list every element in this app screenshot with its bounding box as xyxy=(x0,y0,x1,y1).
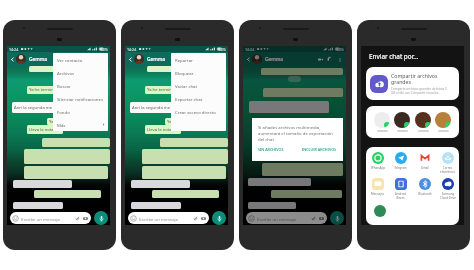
button[interactable]: Crear acceso directo xyxy=(171,105,226,118)
button[interactable]: Android Beam xyxy=(389,178,412,200)
staticText: Correo electrónico xyxy=(440,166,455,174)
staticText: Gmail xyxy=(421,166,429,170)
button[interactable]: Video call xyxy=(80,55,88,63)
staticText: Silenciar notificaciones xyxy=(57,96,104,102)
button[interactable]: Voice message xyxy=(94,211,108,225)
button[interactable]: Contact xyxy=(415,112,431,132)
staticText: 14:24 xyxy=(9,47,19,52)
staticText: Exportar chat xyxy=(175,96,203,102)
staticText: Si añades archivos multimedia, aumentará… xyxy=(258,124,333,142)
button[interactable]: Compartir archivos grandes xyxy=(366,67,459,100)
staticText: Archivos xyxy=(57,70,75,76)
button[interactable]: Exportar chat xyxy=(171,92,226,105)
button[interactable]: Back xyxy=(126,55,134,63)
button[interactable]: Reportar xyxy=(171,53,226,66)
button[interactable]: SIN ARCHIVOS xyxy=(258,147,284,152)
button[interactable]: Back xyxy=(244,55,252,63)
staticText: 14:24 xyxy=(127,47,137,52)
button[interactable]: Telegram xyxy=(389,152,412,170)
staticText: Buscar xyxy=(57,83,71,89)
button[interactable]: Contact xyxy=(394,112,410,132)
staticText: Ver contacto xyxy=(57,57,83,63)
staticText: Gemma xyxy=(147,56,166,63)
staticText: Enviar chat por... xyxy=(369,52,419,61)
button[interactable]: Gmail xyxy=(413,152,436,170)
staticText: 14:24 xyxy=(245,47,255,52)
button[interactable]: Voice message xyxy=(212,211,226,225)
staticText: Escribe un mensaje xyxy=(257,216,297,222)
button[interactable]: Escribe un mensaje xyxy=(128,212,209,224)
staticText: Anri la segunda me xyxy=(132,105,171,111)
button[interactable]: Contact xyxy=(374,112,390,132)
staticText: Telegram xyxy=(394,166,407,170)
staticText: INCLUIR ARCHIVOS xyxy=(302,147,337,152)
staticText: Bloquear xyxy=(175,70,194,76)
staticText: Bluetooth xyxy=(418,192,432,196)
button[interactable]: Ver contacto xyxy=(53,53,108,66)
button[interactable]: Samsung Cloud Drive xyxy=(436,178,459,200)
button[interactable]: Buscar xyxy=(53,79,108,92)
button[interactable]: Más xyxy=(53,118,108,131)
button[interactable]: Escribe un mensaje xyxy=(246,212,327,224)
staticText: Samsung Cloud Drive xyxy=(440,192,456,200)
button[interactable]: Escribe un mensaje xyxy=(10,212,91,224)
button[interactable]: Silenciar notificaciones xyxy=(53,92,108,105)
staticText: Anri la segunda me xyxy=(14,105,53,111)
button[interactable]: Video call xyxy=(316,55,324,63)
staticText: Ya xyxy=(49,119,54,125)
staticText: Ya he termin xyxy=(147,87,172,93)
staticText: Fondo xyxy=(57,109,70,115)
button[interactable]: App xyxy=(374,205,386,217)
button[interactable]: WhatsApp xyxy=(366,152,389,170)
staticText: SIN ARCHIVOS xyxy=(258,147,284,152)
button[interactable]: More options xyxy=(336,56,343,63)
staticText: 72% xyxy=(219,47,226,52)
staticText: Lleva la nota xyxy=(147,127,172,133)
staticText: Compartir archivos grandes xyxy=(391,72,438,86)
button[interactable]: Contact xyxy=(435,112,451,132)
button[interactable]: Archivos xyxy=(53,66,108,79)
button[interactable]: Back xyxy=(8,55,16,63)
button[interactable]: Fondo xyxy=(53,105,108,118)
button[interactable]: Vaciar chat xyxy=(171,79,226,92)
staticText: Vaciar chat xyxy=(175,83,198,89)
button[interactable]: Bloquear xyxy=(171,66,226,79)
staticText: Mensajes xyxy=(371,192,384,196)
staticText: Reportar xyxy=(175,57,193,63)
button[interactable]: Bluetooth xyxy=(413,178,436,196)
staticText: Lleva la nota xyxy=(29,127,54,133)
staticText: Gemma xyxy=(265,56,284,63)
staticText: Crear acceso directo xyxy=(175,109,216,115)
button[interactable]: Call xyxy=(326,55,334,63)
staticText: Ya xyxy=(167,119,172,125)
staticText: Más xyxy=(57,122,66,128)
staticText: Android Beam xyxy=(395,192,406,200)
button[interactable]: Mensajes xyxy=(366,178,389,196)
staticText: Gemma xyxy=(29,56,48,63)
staticText: Comparte archivos grandes de hasta 2 GB … xyxy=(391,87,447,95)
staticText: Escribe un mensaje xyxy=(21,216,61,222)
button[interactable]: INCLUIR ARCHIVOS xyxy=(302,147,337,152)
staticText: Ya he termin xyxy=(29,87,54,93)
staticText: WhatsApp xyxy=(371,166,385,170)
staticText: 72% xyxy=(337,47,344,52)
button[interactable]: Correo electrónico xyxy=(436,152,459,174)
staticText: Escribe un mensaje xyxy=(139,216,179,222)
button[interactable]: Voice message xyxy=(330,211,344,225)
staticText: 72% xyxy=(101,47,108,52)
